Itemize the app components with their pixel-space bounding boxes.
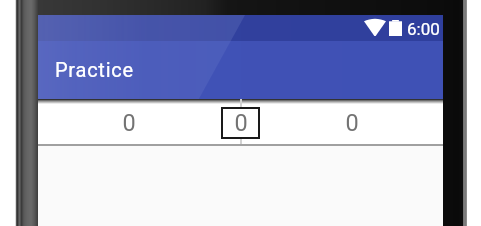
button[interactable]: 0 (38, 99, 219, 144)
other: Wi-Fi signal (364, 20, 386, 36)
button[interactable]: 0 (261, 99, 443, 144)
staticText: 0 (234, 109, 248, 137)
other: Battery full (389, 20, 402, 36)
staticText: 0 (345, 109, 359, 137)
button[interactable]: Practice (38, 41, 134, 99)
button[interactable]: 0 (219, 99, 261, 144)
staticText: 0 (122, 109, 136, 137)
staticText: Practice (55, 58, 134, 81)
staticText: 6:00 (407, 19, 440, 39)
